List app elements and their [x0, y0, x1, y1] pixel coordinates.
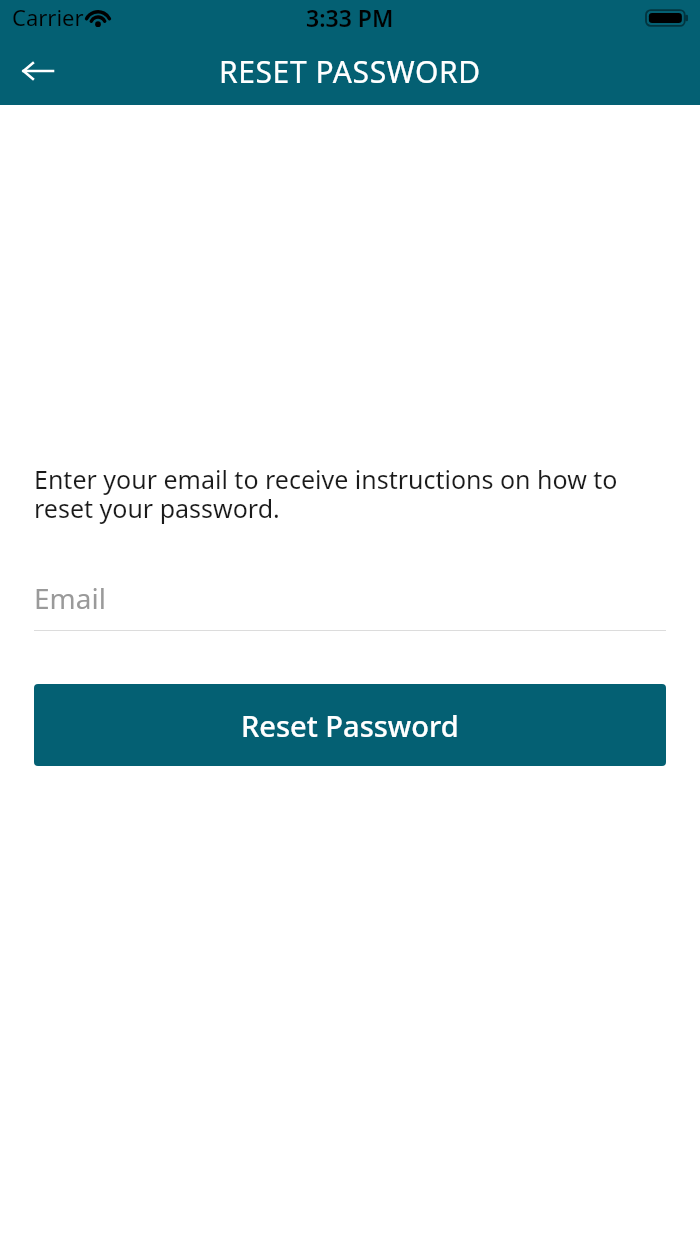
- staticText: Reset Password: [241, 706, 459, 745]
- button[interactable]: Reset Password: [34, 684, 666, 766]
- staticText: Email: [34, 579, 106, 617]
- staticText: RESET PASSWORD: [219, 51, 481, 92]
- staticText: Carrier: [12, 2, 84, 32]
- staticText: Enter your email to receive instructions…: [34, 462, 666, 525]
- button[interactable]: Back: [0, 36, 76, 105]
- button[interactable]: Email: [34, 579, 666, 631]
- staticText: 3:33 PM: [306, 2, 394, 33]
